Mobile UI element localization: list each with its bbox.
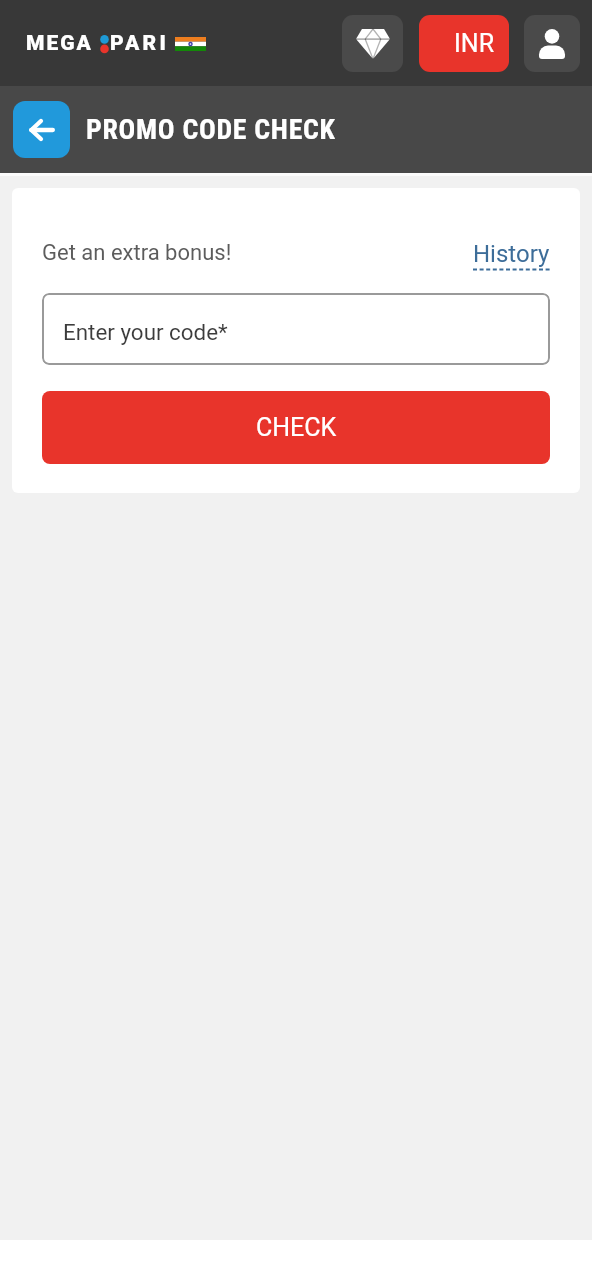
staticText: Enter your code* xyxy=(63,319,228,345)
staticText: History xyxy=(473,240,550,268)
staticText: CHECK xyxy=(256,413,337,442)
button[interactable]: Profile xyxy=(524,15,580,72)
button[interactable]: Enter your code* xyxy=(42,293,550,365)
button[interactable]: INR xyxy=(419,15,509,72)
staticText: PROMO CODE CHECK xyxy=(86,113,336,146)
staticText: Get an extra bonus! xyxy=(42,240,232,266)
button[interactable]: History xyxy=(473,240,550,274)
button[interactable]: Bonuses xyxy=(342,15,403,72)
button[interactable]: Back xyxy=(13,101,70,158)
staticText: MEGA xyxy=(26,31,93,56)
button[interactable]: CHECK xyxy=(42,391,550,464)
staticText: PARI xyxy=(110,31,170,56)
staticText: INR xyxy=(454,29,495,58)
